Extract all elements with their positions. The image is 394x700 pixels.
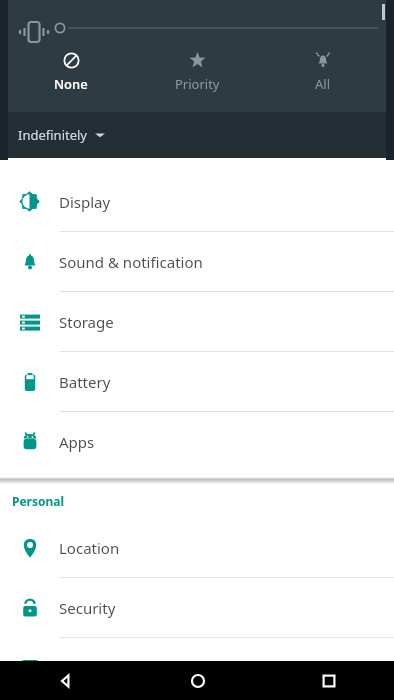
button[interactable]: Volume slider xyxy=(54,22,378,34)
staticText: Priority xyxy=(175,75,220,93)
button[interactable]: Accounts xyxy=(0,638,394,698)
staticText: None xyxy=(54,75,88,93)
button[interactable]: Battery xyxy=(0,352,394,412)
staticText: Location xyxy=(59,538,120,558)
staticText: Battery xyxy=(59,372,111,392)
button[interactable]: Sound & notification xyxy=(0,232,394,292)
staticText: Indefinitely xyxy=(18,126,87,144)
staticText: Storage xyxy=(59,312,114,332)
staticText: Display xyxy=(59,192,111,212)
staticText: Accounts xyxy=(59,658,124,678)
button[interactable]: Apps xyxy=(0,412,394,471)
staticText: Personal xyxy=(12,493,65,509)
button[interactable]: Storage xyxy=(0,292,394,352)
button[interactable]: Back xyxy=(0,661,132,700)
staticText: Security xyxy=(59,598,116,618)
button[interactable]: Location xyxy=(0,518,394,578)
button[interactable]: Indefinitely xyxy=(8,112,386,158)
button[interactable]: Display xyxy=(0,172,394,232)
button[interactable]: Recent apps xyxy=(263,661,394,700)
button[interactable]: Home xyxy=(132,661,263,700)
button[interactable]: Security xyxy=(0,578,394,638)
button[interactable]: None xyxy=(8,48,134,95)
button[interactable]: Vibrate mode xyxy=(16,14,52,50)
staticText: Sound & notification xyxy=(59,252,203,272)
button[interactable]: Priority xyxy=(134,48,260,95)
button[interactable]: All xyxy=(260,48,386,95)
staticText: All xyxy=(315,75,331,93)
staticText: Apps xyxy=(59,432,95,452)
